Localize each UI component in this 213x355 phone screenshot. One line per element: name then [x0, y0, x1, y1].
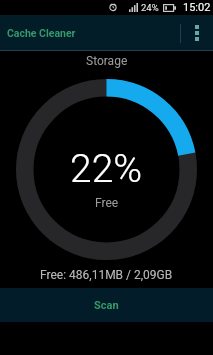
staticText: 24%	[141, 2, 159, 13]
staticText: 22%	[70, 146, 143, 186]
staticText: Storage	[86, 54, 128, 68]
button[interactable]: More options	[184, 15, 210, 51]
staticText: Cache Cleaner	[7, 27, 76, 39]
staticText: Scan	[94, 299, 119, 312]
staticText: 15:02	[183, 1, 211, 14]
staticText: Free	[95, 196, 119, 210]
button[interactable]: Scan	[0, 288, 213, 322]
staticText: Free: 486,11MB / 2,09GB	[40, 268, 173, 282]
